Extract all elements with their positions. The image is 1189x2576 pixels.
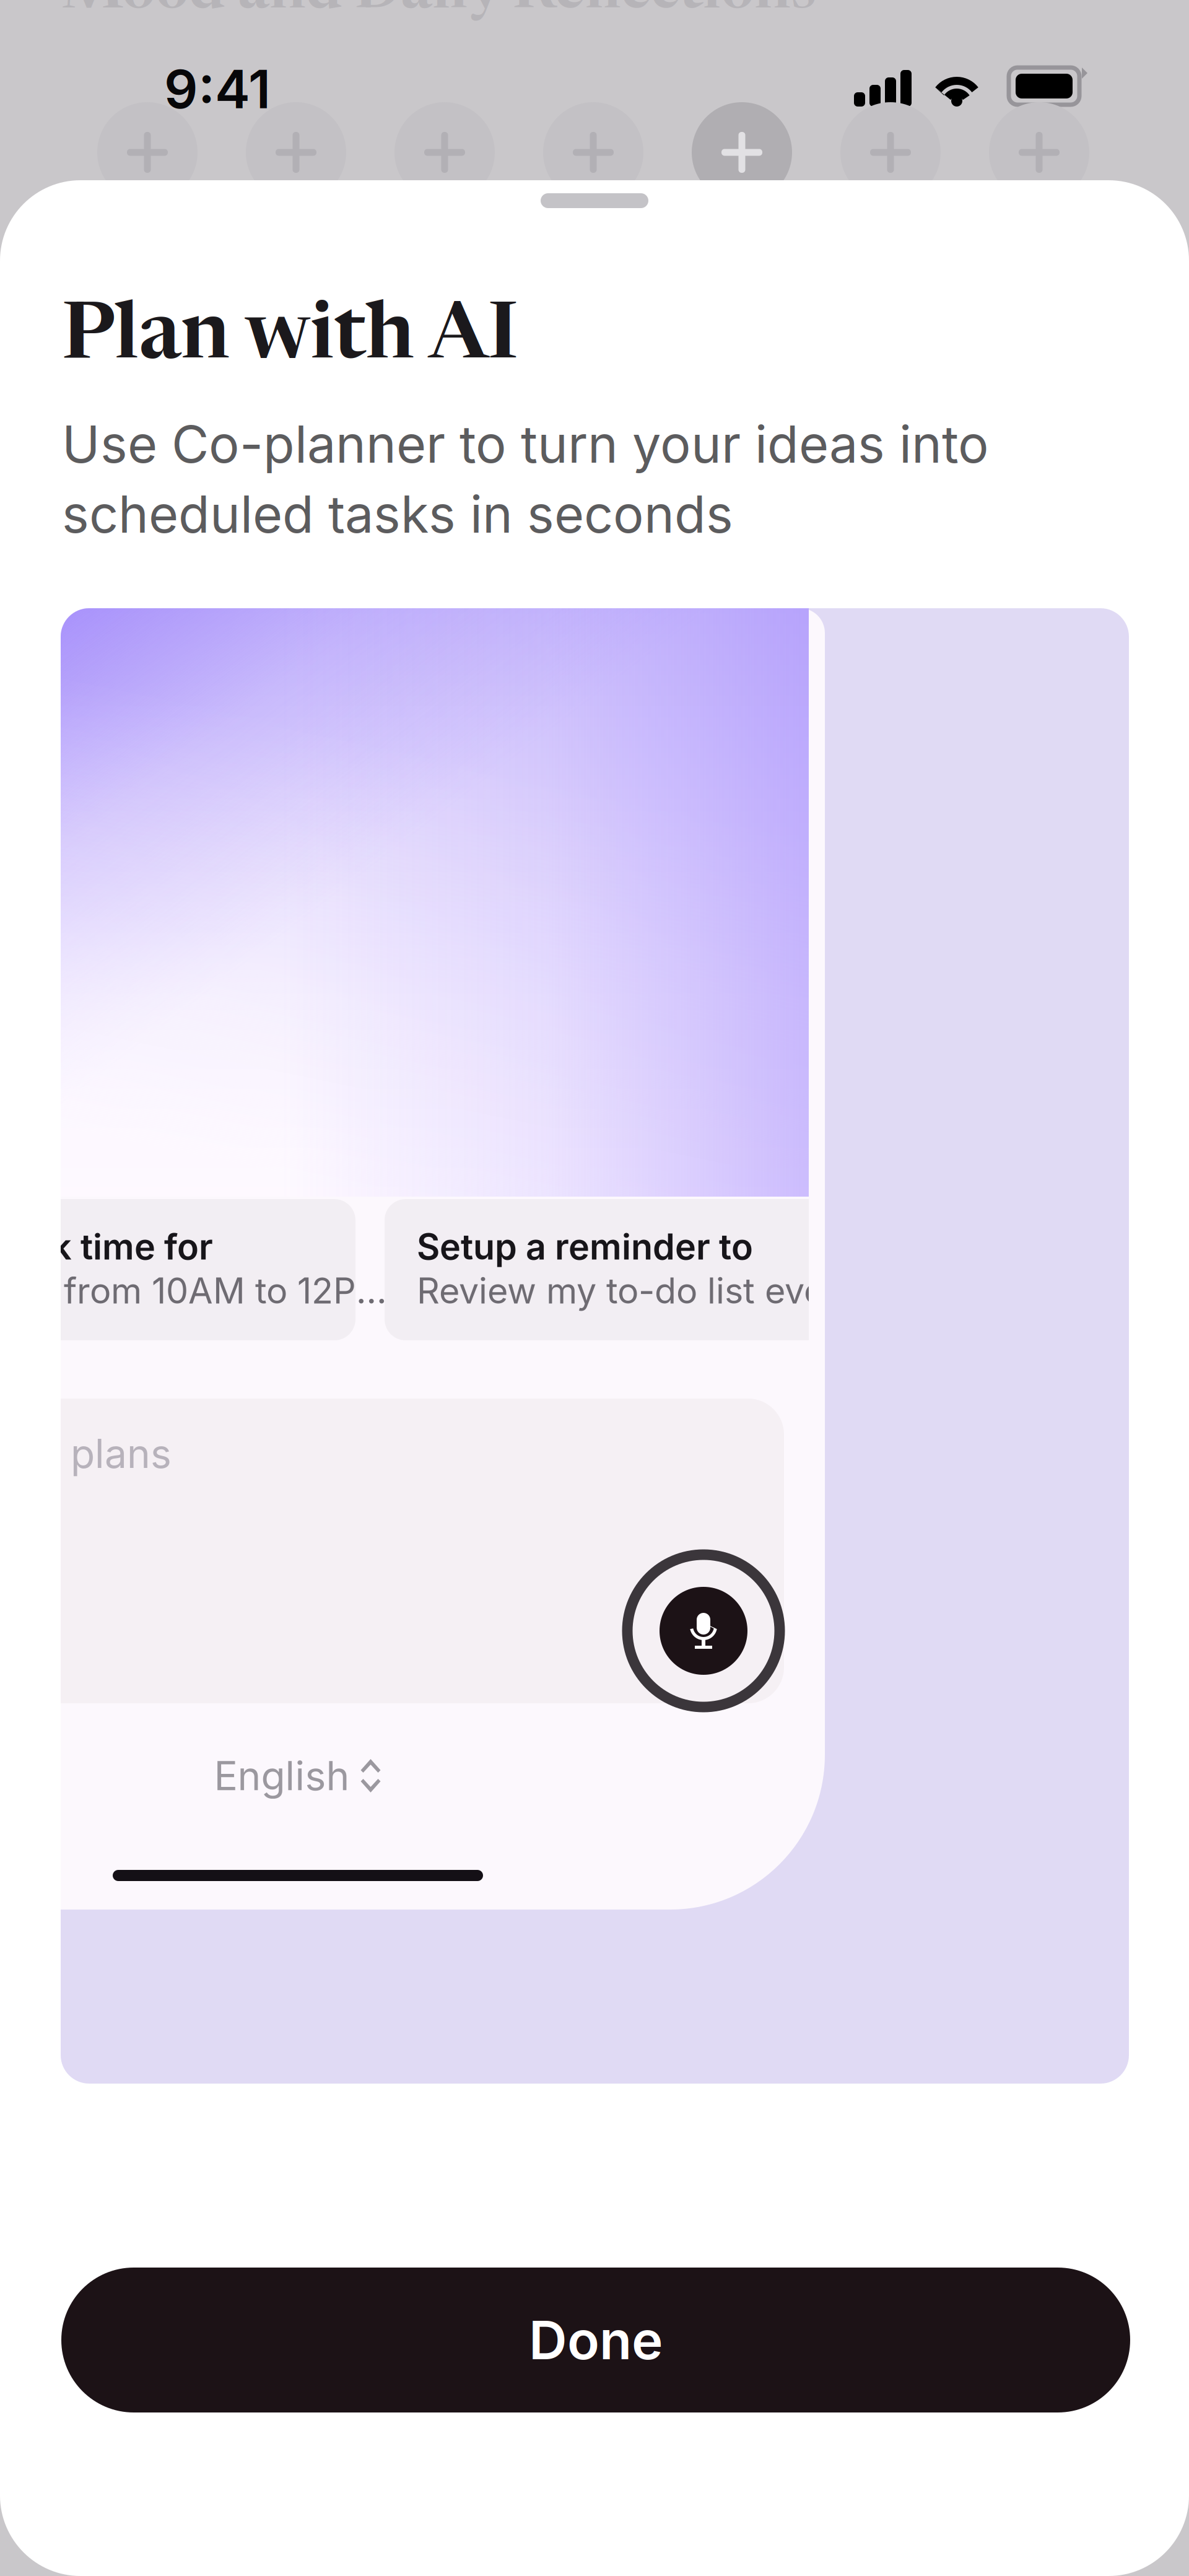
staticText: Mood and Daily Reflections [62, 0, 816, 22]
staticText: Gym from 10AM to 12PM [0, 1269, 388, 1312]
staticText: Use Co-planner to turn your ideas into [62, 413, 989, 475]
staticText: Review my to-do list every day [417, 1269, 887, 1312]
staticText: Speak your plans [0, 1430, 172, 1477]
staticText: Plan with AI [62, 300, 518, 378]
staticText: Block time for [0, 1225, 213, 1268]
staticText: 9:41 [164, 57, 271, 121]
staticText: Setup a reminder to [417, 1225, 753, 1268]
button[interactable]: Done [61, 2268, 1130, 2412]
staticText: English [214, 1752, 350, 1800]
staticText: Done [529, 2308, 663, 2372]
staticText: scheduled tasks in seconds [62, 483, 733, 545]
